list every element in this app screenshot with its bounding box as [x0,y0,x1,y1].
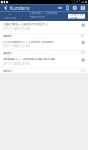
button[interactable]: CHECK-IN OPEN [68,14,85,19]
staticText: 27 MAR [41,19,46,21]
button[interactable]: CTS BUSINESS KIT — ZAGREB LUGGAGE [0,38,88,56]
staticText: ZAGREB — LONDON HEATHROW [30,11,57,19]
button[interactable]: CLEAR PASS — CABIN PRIORITY 2 [0,21,88,38]
button[interactable]: TERMINAL 2 — INTERNATIONAL ARRIVAL [0,56,88,73]
staticText: · [31,6,32,10]
staticText: Kundera [9,4,29,11]
staticText: A1 [81,34,85,38]
staticText: CODE [8,13,12,15]
staticText: Twitter [3,69,12,72]
staticText: 2017 / ADD 20 KG [3,62,30,65]
button[interactable]: Preview [58,6,62,10]
button[interactable]: Back [2,5,9,11]
button[interactable]: More options [81,6,85,10]
staticText: 2017 / ADD 20 KG [3,27,30,30]
staticText: X4K9LQ [4,16,15,19]
staticText: Twitter [3,51,12,55]
staticText: CTS BUSINESS KIT — ZAGREB LUGGAGE [3,40,53,43]
staticText: CLEAR PASS — CABIN PRIORITY 2 [3,22,48,26]
staticText: TERMINAL 2 — INTERNATIONAL ARRIVAL [3,57,55,61]
staticText: Twitter [3,34,12,38]
button[interactable]: Call [66,6,69,10]
staticText: 2017 / ADD 20 KG [3,44,30,48]
staticText: B4 [81,51,85,55]
staticText: CHECK-IN OPEN [70,13,83,20]
staticText: C2 [81,69,85,72]
button[interactable]: History [73,6,77,10]
staticText: 12:07 [71,0,80,4]
